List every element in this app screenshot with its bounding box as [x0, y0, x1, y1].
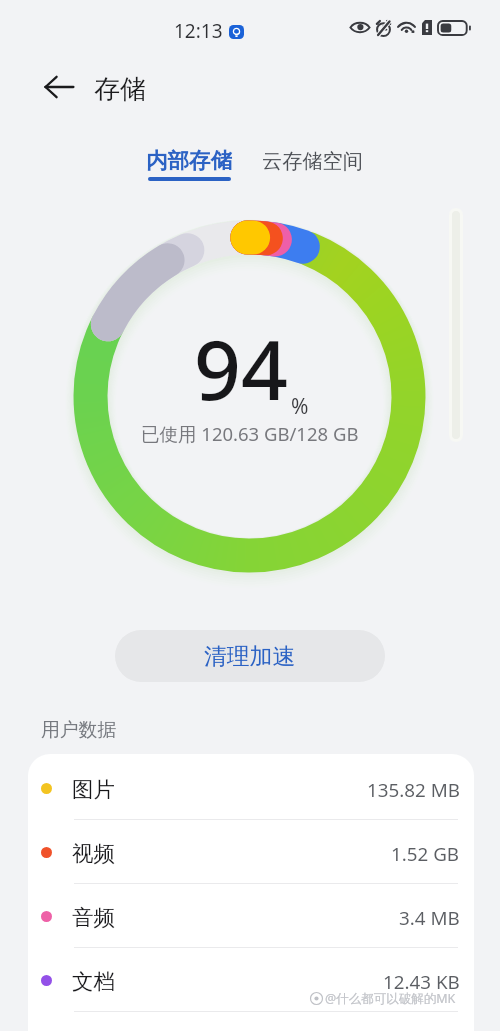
staticText: 3.4 MB — [399, 905, 460, 931]
staticText: 文档 — [72, 968, 115, 995]
button[interactable]: 清理加速 — [115, 630, 385, 682]
staticText: 视频 — [72, 840, 115, 867]
staticText: 12.43 KB — [383, 969, 460, 995]
staticText: 清理加速 — [204, 642, 296, 671]
staticText: 94 — [194, 312, 288, 424]
button[interactable]: Back — [38, 66, 80, 108]
staticText: 135.82 MB — [367, 777, 460, 803]
button[interactable]: 音频 — [28, 884, 474, 948]
staticText: 存储 — [94, 73, 146, 106]
staticText: 内部存储 — [146, 147, 232, 174]
button[interactable]: 内部存储 — [138, 142, 240, 190]
button[interactable]: 图片 — [28, 756, 474, 820]
staticText: 音频 — [72, 904, 115, 931]
staticText: 图片 — [72, 776, 115, 803]
button[interactable]: 文档 — [28, 948, 474, 1012]
staticText: 已使用 120.63 GB/128 GB — [141, 421, 359, 446]
staticText: 12:13 — [174, 18, 223, 44]
staticText: 云存储空间 — [262, 149, 363, 174]
staticText: @什么都可以破解的MK — [325, 990, 456, 1007]
button[interactable]: 云存储空间 — [255, 142, 369, 182]
staticText: 用户数据 — [41, 718, 117, 742]
button[interactable]: 视频 — [28, 820, 474, 884]
staticText: % — [291, 392, 309, 421]
staticText: 1.52 GB — [391, 841, 460, 867]
